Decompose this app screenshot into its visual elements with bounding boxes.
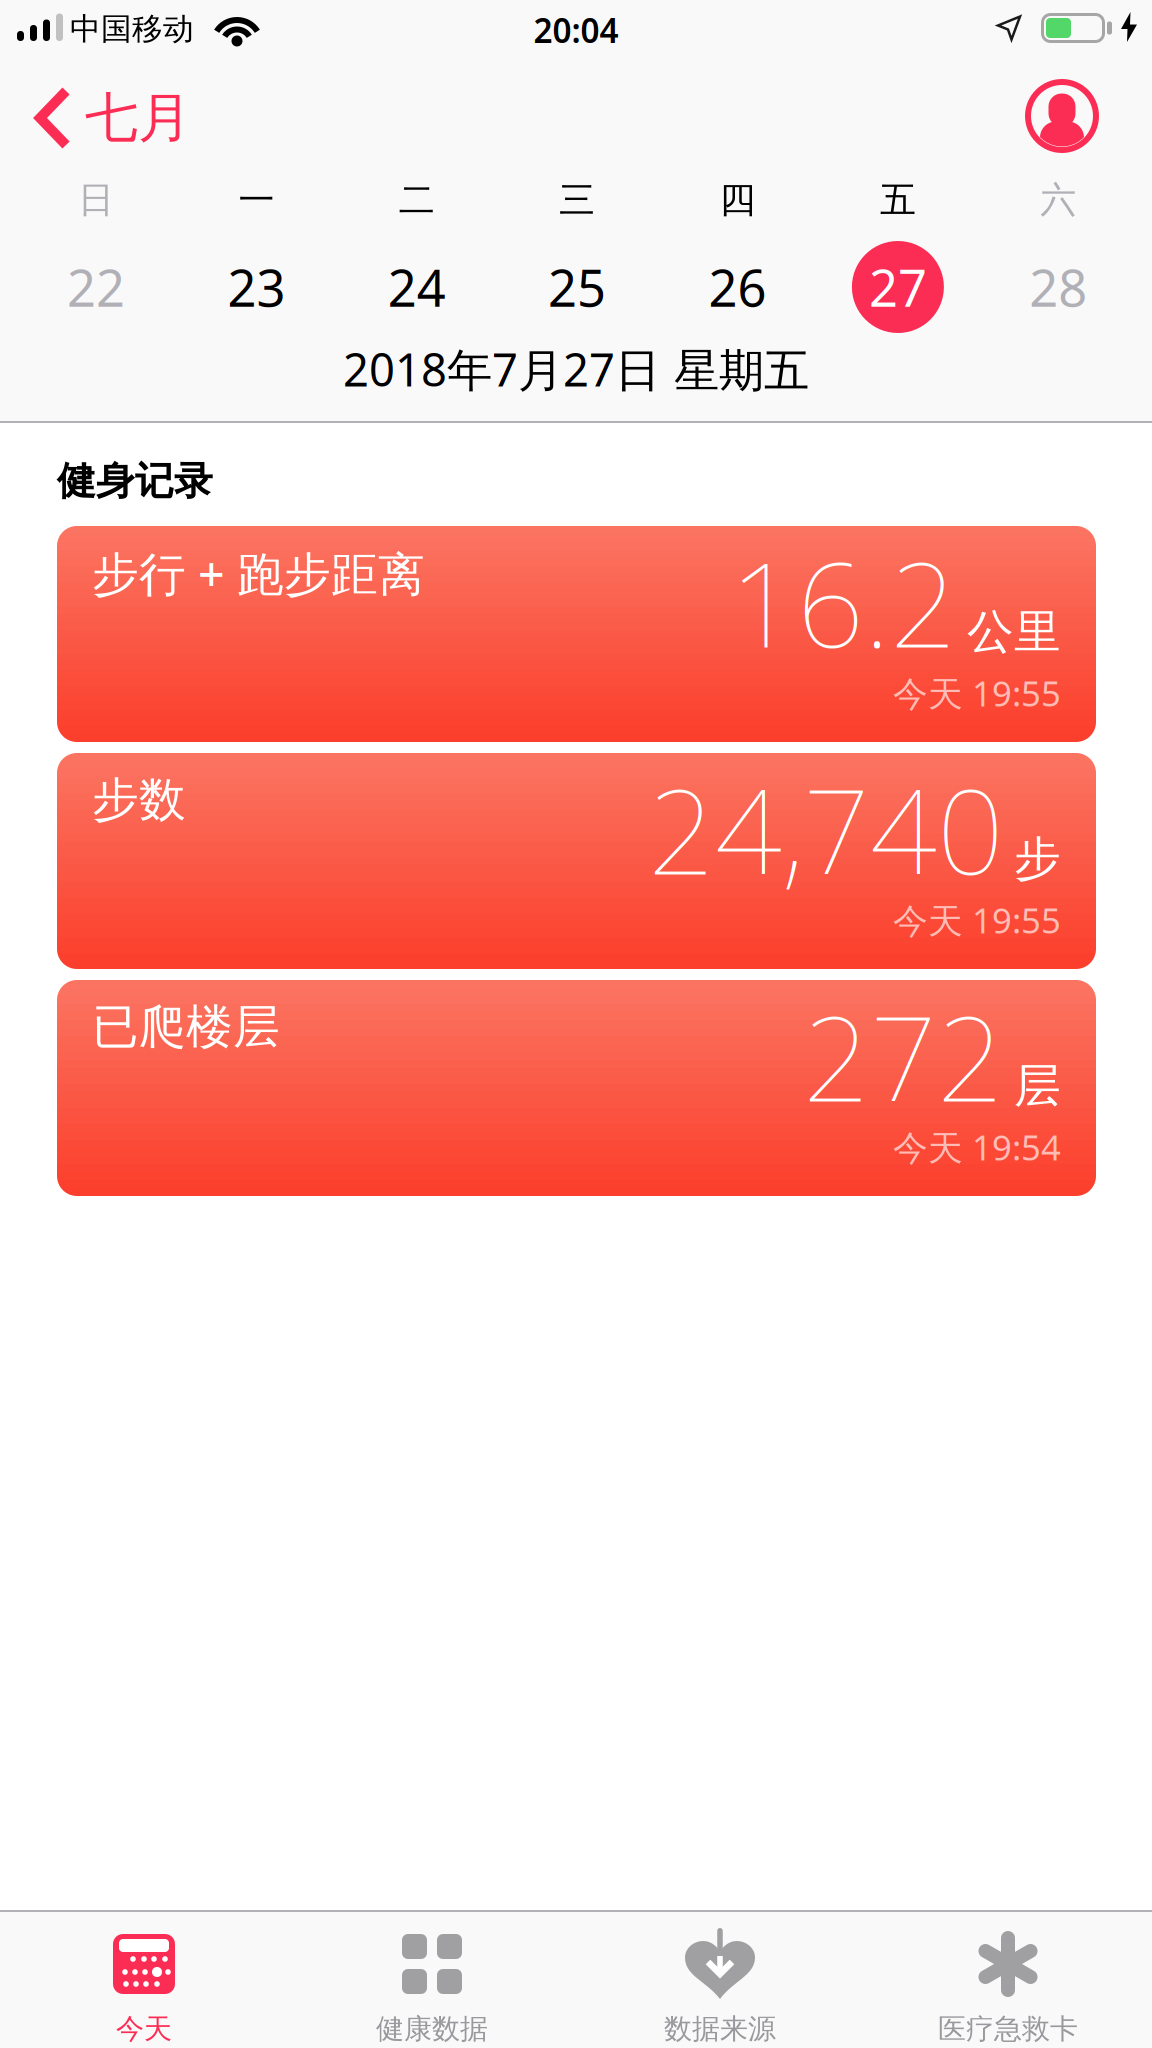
staticText: 今天 19:55 bbox=[893, 670, 1061, 716]
staticText: 26 bbox=[708, 253, 766, 321]
staticText: 22 bbox=[67, 253, 125, 321]
staticText: 步数 bbox=[92, 771, 186, 829]
button[interactable]: 二 bbox=[342, 180, 492, 333]
button[interactable]: 今天 bbox=[0, 1912, 288, 2048]
staticText: 二 bbox=[399, 178, 435, 222]
staticText: 24 bbox=[388, 253, 446, 321]
staticText: 健康数据 bbox=[376, 2012, 488, 2046]
staticText: 五 bbox=[880, 178, 916, 222]
button[interactable]: 步数 bbox=[57, 753, 1096, 969]
staticText: 今天 bbox=[116, 2012, 172, 2046]
button[interactable]: 数据来源 bbox=[576, 1912, 864, 2048]
staticText: 步 bbox=[1014, 830, 1061, 888]
staticText: 24,740 bbox=[648, 751, 1004, 907]
staticText: 27 bbox=[869, 253, 927, 321]
staticText: 今天 19:54 bbox=[893, 1124, 1061, 1170]
button[interactable]: 六 bbox=[983, 180, 1133, 333]
staticText: 七月 bbox=[85, 85, 191, 151]
button[interactable]: 五 bbox=[823, 180, 973, 333]
staticText: 层 bbox=[1014, 1057, 1061, 1115]
button[interactable]: 日 bbox=[21, 180, 171, 333]
staticText: 公里 bbox=[967, 603, 1061, 661]
staticText: 28 bbox=[1029, 253, 1087, 321]
button[interactable]: 已爬楼层 bbox=[57, 980, 1096, 1196]
staticText: 272 bbox=[803, 978, 1004, 1134]
staticText: 六 bbox=[1040, 178, 1076, 222]
staticText: 一 bbox=[238, 178, 274, 222]
staticText: 步行 + 跑步距离 bbox=[92, 542, 425, 604]
staticText: 已爬楼层 bbox=[92, 998, 280, 1056]
button[interactable]: 七月 bbox=[35, 85, 191, 151]
staticText: 日 bbox=[78, 178, 114, 222]
button[interactable]: 三 bbox=[502, 180, 652, 333]
staticText: 2018年7月27日 星期五 bbox=[343, 339, 809, 399]
staticText: 健身记录 bbox=[57, 457, 213, 505]
staticText: 四 bbox=[719, 178, 755, 222]
button[interactable]: 健康数据 bbox=[288, 1912, 576, 2048]
button[interactable]: 步行 + 跑步距离 bbox=[57, 526, 1096, 742]
button[interactable]: 个人资料 bbox=[1025, 79, 1099, 153]
staticText: 中国移动 bbox=[70, 10, 194, 48]
staticText: 20:04 bbox=[533, 8, 618, 52]
staticText: 数据来源 bbox=[664, 2012, 776, 2046]
button[interactable]: 一 bbox=[181, 180, 331, 333]
staticText: 三 bbox=[559, 178, 595, 222]
staticText: 25 bbox=[548, 253, 606, 321]
button[interactable]: 四 bbox=[662, 180, 812, 333]
staticText: 医疗急救卡 bbox=[938, 2012, 1078, 2046]
staticText: 23 bbox=[227, 253, 285, 321]
button[interactable]: 医疗急救卡 bbox=[864, 1912, 1152, 2048]
staticText: 16.2 bbox=[730, 524, 957, 680]
staticText: 今天 19:55 bbox=[893, 897, 1061, 943]
